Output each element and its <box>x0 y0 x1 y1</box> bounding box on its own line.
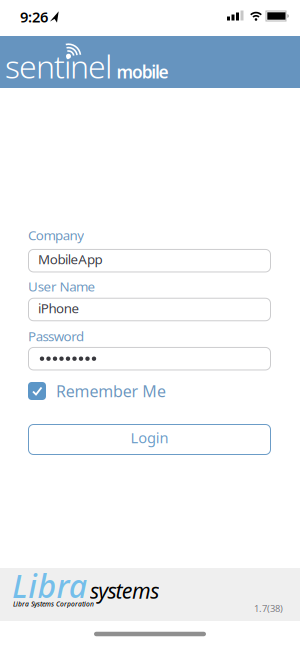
staticText: User Name <box>28 277 96 295</box>
staticText: Remember Me <box>56 380 166 402</box>
staticText: Libra <box>12 564 87 607</box>
staticText: Password <box>28 327 84 345</box>
button[interactable] <box>28 347 271 370</box>
staticText: sentinel <box>5 45 112 87</box>
button[interactable]: Remember Me <box>28 380 272 402</box>
staticText: systems <box>90 576 159 605</box>
button[interactable]: MobileApp <box>28 249 271 272</box>
staticText: mobile <box>116 60 168 83</box>
staticText: Login <box>130 428 169 447</box>
button[interactable]: Login <box>28 424 271 455</box>
staticText: iPhone <box>38 299 79 317</box>
staticText: MobileApp <box>38 250 103 268</box>
staticText: 9:26 <box>20 7 48 27</box>
staticText: 1.7(38) <box>254 602 283 615</box>
button[interactable]: iPhone <box>28 298 271 321</box>
staticText: Libra Systems Corporation <box>13 599 94 608</box>
staticText: Company <box>28 226 84 244</box>
